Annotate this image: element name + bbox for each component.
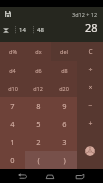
staticText: −: [88, 101, 93, 111]
button[interactable]: +: [77, 115, 103, 133]
button[interactable]: 0: [0, 151, 25, 169]
staticText: 6: [62, 119, 67, 129]
button[interactable]: d8: [51, 61, 77, 79]
staticText: (: [37, 155, 40, 165]
button[interactable]: 4: [0, 115, 25, 133]
button[interactable]: d%: [0, 42, 25, 61]
button[interactable]: 9: [51, 97, 77, 115]
staticText: 3: [62, 137, 67, 147]
staticText: +: [88, 119, 93, 129]
button[interactable]: ÷: [77, 61, 103, 79]
staticText: 14: [19, 26, 26, 34]
button[interactable]: d12: [25, 79, 51, 97]
button[interactable]: (: [25, 151, 51, 169]
button[interactable]: Home: [43, 169, 57, 183]
staticText: 8: [36, 101, 41, 111]
staticText: 3d12 + 12: [72, 11, 98, 18]
staticText: 1: [10, 137, 15, 147]
button[interactable]: 3: [51, 133, 77, 151]
button[interactable]: d20: [51, 79, 77, 97]
button[interactable]: 6: [51, 115, 77, 133]
staticText: dx: [35, 48, 42, 55]
staticText: 0: [10, 155, 15, 165]
staticText: 9: [62, 101, 67, 111]
staticText: ÷: [88, 65, 93, 75]
staticText: del: [60, 48, 68, 55]
staticText: 2: [36, 137, 41, 147]
staticText: d10: [8, 85, 18, 92]
staticText: 48: [37, 26, 44, 34]
staticText: d12: [33, 85, 43, 92]
button[interactable]: Save: [2, 8, 13, 19]
button[interactable]: d4: [0, 61, 25, 79]
button[interactable]: Collapse: [0, 24, 12, 36]
staticText: d20: [59, 85, 69, 92]
button[interactable]: d6: [25, 61, 51, 79]
staticText: 28: [85, 20, 98, 35]
staticText: 5: [36, 119, 41, 129]
staticText: ×: [88, 83, 93, 93]
button[interactable]: −: [77, 97, 103, 115]
staticText: d%: [9, 48, 17, 55]
staticText: 7: [10, 101, 15, 111]
button[interactable]: Roll dice: [77, 133, 103, 169]
button[interactable]: 2: [25, 133, 51, 151]
button[interactable]: Back: [15, 169, 29, 183]
button[interactable]: d10: [0, 79, 25, 97]
staticText: 4: [10, 119, 15, 129]
button[interactable]: 1: [0, 133, 25, 151]
staticText: d4: [9, 67, 16, 74]
button[interactable]: 5: [25, 115, 51, 133]
button[interactable]: 7: [0, 97, 25, 115]
button[interactable]: Recent apps: [73, 169, 87, 183]
button[interactable]: 8: [25, 97, 51, 115]
staticText: ): [63, 155, 66, 165]
button[interactable]: C: [77, 42, 103, 61]
button[interactable]: dx: [25, 42, 51, 61]
button[interactable]: ×: [77, 79, 103, 97]
button[interactable]: ): [51, 151, 77, 169]
staticText: C: [88, 47, 93, 56]
staticText: d8: [61, 67, 68, 74]
button[interactable]: del: [51, 42, 77, 61]
staticText: d6: [35, 67, 42, 74]
